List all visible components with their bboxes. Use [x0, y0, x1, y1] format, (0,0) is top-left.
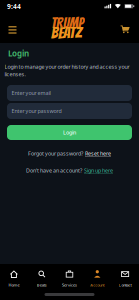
staticText: Reset here	[85, 150, 111, 157]
button[interactable]: Cart	[118, 23, 132, 35]
button[interactable]: Sign up here	[84, 167, 113, 174]
button[interactable]: Login	[7, 125, 132, 140]
button[interactable]: Services	[56, 265, 83, 291]
staticText: Home	[8, 282, 19, 288]
button[interactable]: Contact	[111, 265, 139, 291]
staticText: Enter your email	[11, 89, 50, 97]
staticText: Beats	[37, 282, 47, 288]
staticText: Services	[62, 282, 77, 288]
button[interactable]: Menu	[6, 24, 20, 36]
staticText: 9:44	[7, 2, 21, 11]
staticText: BEATZ	[51, 24, 82, 41]
staticText: Enter your password	[11, 107, 61, 115]
staticText: Login to manage your order history and a…	[4, 63, 129, 70]
staticText: Login	[8, 48, 29, 59]
staticText: Forgot your password?	[28, 150, 83, 157]
button[interactable]: Enter your password	[7, 103, 132, 119]
button[interactable]: Beats	[28, 265, 56, 291]
staticText: Don't have an account?	[26, 167, 82, 174]
staticText: TRUMP	[51, 15, 84, 31]
button[interactable]: Enter your email	[7, 85, 132, 101]
button[interactable]: Account	[83, 265, 111, 291]
staticText: Contact	[119, 282, 132, 288]
staticText: Sign up here	[84, 167, 113, 174]
button[interactable]: Reset here	[85, 150, 111, 157]
staticText: Login	[63, 129, 76, 136]
button[interactable]: Home	[0, 265, 28, 291]
staticText: licenses.	[4, 71, 25, 78]
staticText: Account	[90, 282, 104, 288]
